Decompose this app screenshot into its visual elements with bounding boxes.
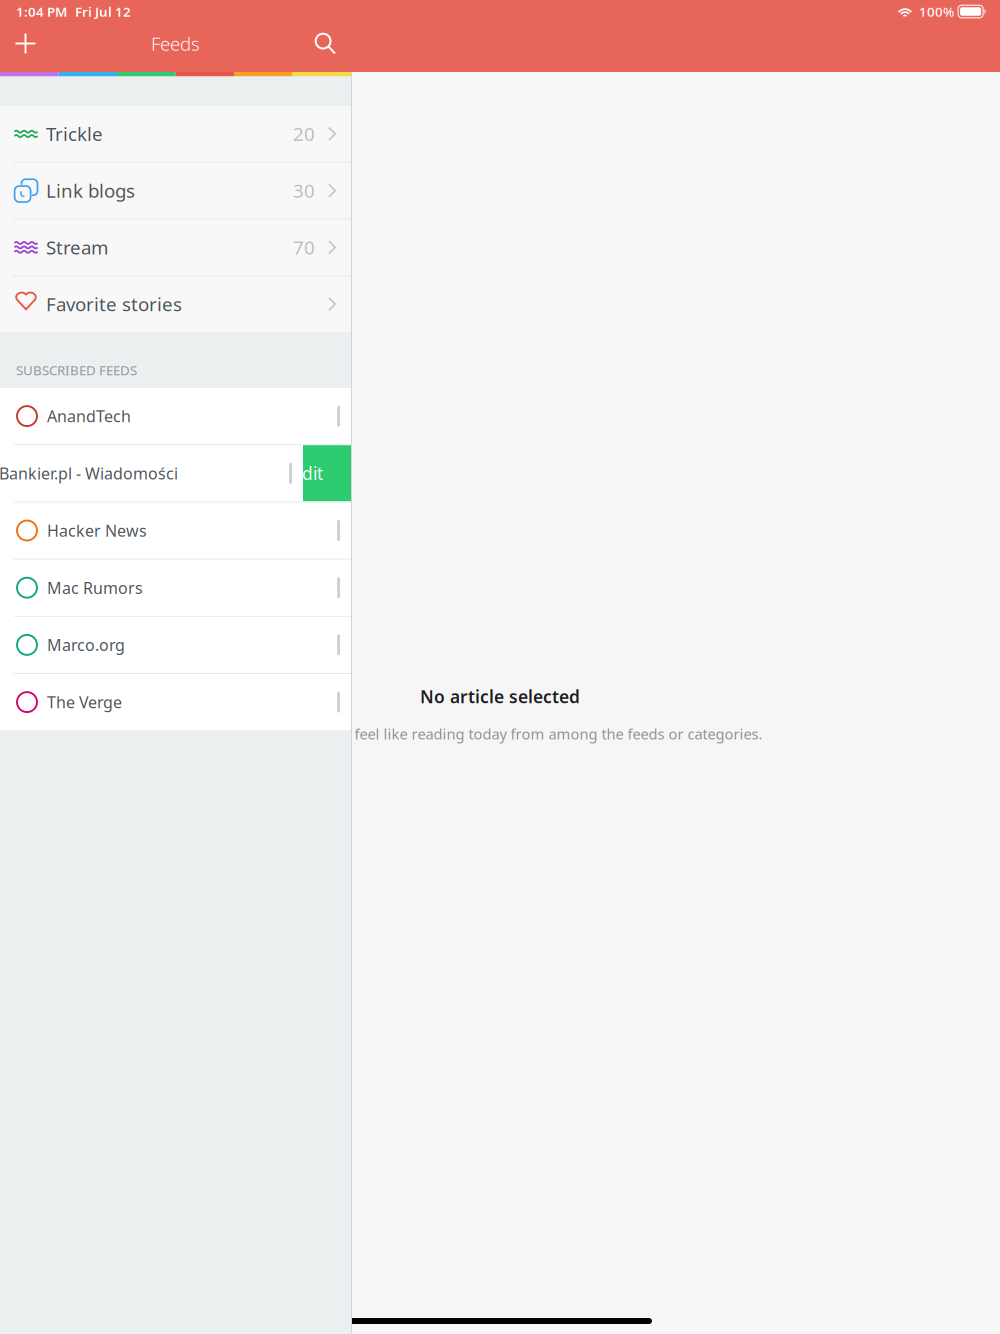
button[interactable]: Stream (0, 219, 351, 275)
button[interactable]: AnandTech (0, 388, 351, 444)
staticText: The Verge (47, 691, 122, 713)
button[interactable]: Favorite stories (0, 276, 351, 332)
button[interactable]: Bankier.pl - Wiadomości (0, 445, 351, 501)
staticText: Trickle (46, 121, 103, 146)
button[interactable]: Hacker News (0, 502, 351, 559)
button[interactable]: Link blogs (0, 163, 351, 219)
button[interactable]: The Verge (0, 674, 351, 730)
staticText: 1:04 PM (16, 3, 67, 20)
staticText: 70 (293, 235, 315, 260)
staticText: Edit (292, 462, 323, 485)
staticText: AnandTech (47, 405, 131, 427)
staticText: Marco.org (47, 634, 125, 655)
button[interactable]: Mac Rumors (0, 560, 351, 616)
staticText: Mac Rumors (47, 577, 143, 598)
staticText: Feeds (151, 31, 200, 56)
staticText: Bankier.pl - Wiadomości (0, 463, 178, 484)
staticText: Favorite stories (46, 292, 182, 316)
button[interactable]: Add feed (0, 21, 51, 65)
staticText: 100% (919, 3, 954, 20)
button[interactable]: Trickle (0, 106, 351, 162)
staticText: Link blogs (46, 178, 135, 203)
button[interactable]: Search (300, 21, 351, 65)
staticText: Stream (46, 235, 108, 260)
staticText: Fri Jul 12 (75, 3, 131, 20)
staticText: Hacker News (47, 520, 147, 541)
button[interactable]: Edit (303, 445, 351, 501)
staticText: 30 (293, 178, 315, 203)
staticText: No article selected (420, 685, 580, 708)
staticText: Pick something you feel like reading tod… (215, 724, 762, 743)
staticText: 20 (293, 121, 315, 146)
button[interactable]: Marco.org (0, 617, 351, 673)
staticText: SUBSCRIBED FEEDS (16, 361, 137, 379)
